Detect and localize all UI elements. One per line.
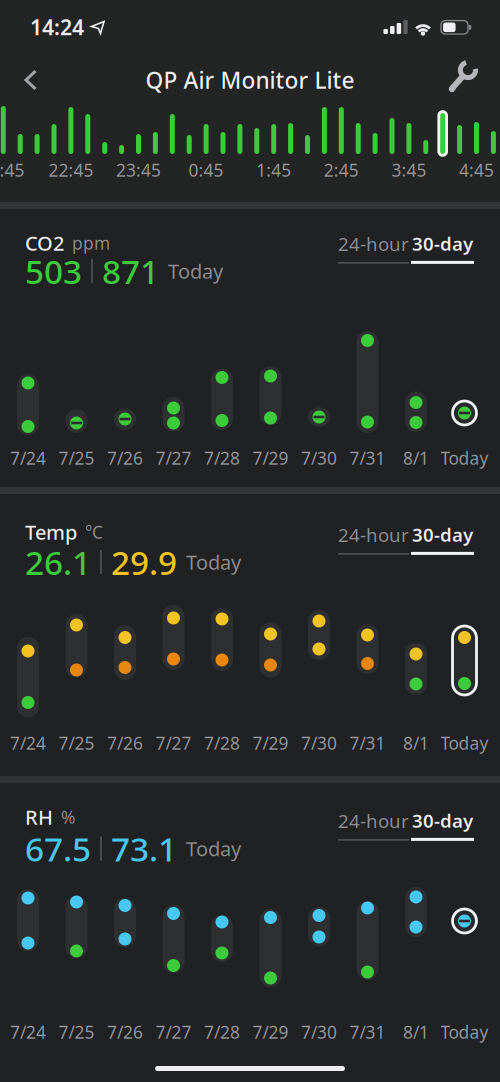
staticText: :45 xyxy=(0,158,24,181)
staticText: 7/30 xyxy=(301,446,337,469)
staticText: Today xyxy=(440,1020,488,1043)
staticText: 24-hour xyxy=(338,231,409,256)
staticText: 871 xyxy=(102,249,159,293)
staticText: 7/30 xyxy=(301,1020,337,1043)
staticText: 7/28 xyxy=(204,446,240,469)
staticText: 8/1 xyxy=(403,446,429,469)
staticText: 7/24 xyxy=(10,446,46,469)
staticText: 7/31 xyxy=(349,1020,385,1043)
staticText: 7/26 xyxy=(107,731,143,754)
staticText: 7/24 xyxy=(10,1020,46,1043)
staticText: 7/29 xyxy=(252,731,288,754)
staticText: 26.1 xyxy=(25,540,91,584)
staticText: 8/1 xyxy=(403,731,429,754)
button[interactable]: Settings xyxy=(441,55,485,99)
staticText: Today xyxy=(168,258,223,284)
staticText: 2:45 xyxy=(324,158,359,181)
staticText: 7/31 xyxy=(349,731,385,754)
button[interactable]: 30-day xyxy=(411,231,474,264)
staticText: 30-day xyxy=(412,522,473,547)
button[interactable]: 24-hour xyxy=(338,522,409,555)
staticText: ppm xyxy=(72,231,110,254)
staticText: 67.5 xyxy=(25,826,91,871)
staticText: Today xyxy=(440,446,488,469)
staticText: CO2 xyxy=(25,230,64,256)
staticText: 7/27 xyxy=(155,446,191,469)
staticText: Today xyxy=(440,731,488,754)
staticText: 1:45 xyxy=(256,158,291,181)
staticText: 7/29 xyxy=(252,1020,288,1043)
staticText: 24-hour xyxy=(338,808,409,833)
staticText: 8/1 xyxy=(403,1020,429,1043)
staticText: Today xyxy=(186,835,241,862)
staticText: 7/24 xyxy=(10,731,46,754)
staticText: Temp xyxy=(25,519,77,545)
button[interactable]: 24-hour xyxy=(338,808,409,841)
staticText: 7/25 xyxy=(58,446,94,469)
staticText: 30-day xyxy=(412,231,473,256)
staticText: 24-hour xyxy=(338,522,409,547)
button[interactable]: 30-day xyxy=(411,808,474,841)
staticText: 23:45 xyxy=(116,158,161,181)
staticText: 7/25 xyxy=(58,1020,94,1043)
staticText: 7/29 xyxy=(252,446,288,469)
staticText: 3:45 xyxy=(391,158,426,181)
staticText: 7/27 xyxy=(155,1020,191,1043)
staticText: 14:24 xyxy=(30,13,84,41)
staticText: 22:45 xyxy=(48,158,93,181)
staticText: % xyxy=(61,805,75,828)
staticText: 73.1 xyxy=(111,826,177,871)
staticText: RH xyxy=(25,804,53,830)
staticText: 7/28 xyxy=(204,1020,240,1043)
staticText: 30-day xyxy=(412,808,473,833)
staticText: Today xyxy=(186,549,241,575)
staticText: QP Air Monitor Lite xyxy=(145,65,354,95)
staticText: °C xyxy=(85,520,103,543)
staticText: 0:45 xyxy=(189,158,224,181)
staticText: 7/28 xyxy=(204,731,240,754)
staticText: 7/26 xyxy=(107,1020,143,1043)
staticText: 7/30 xyxy=(301,731,337,754)
staticText: 7/26 xyxy=(107,446,143,469)
staticText: 7/25 xyxy=(58,731,94,754)
staticText: 7/31 xyxy=(349,446,385,469)
button[interactable]: 30-day xyxy=(411,522,474,555)
staticText: 29.9 xyxy=(111,540,177,584)
staticText: 503 xyxy=(25,249,82,293)
button[interactable]: Back xyxy=(9,58,53,102)
staticText: 4:45 xyxy=(459,158,494,181)
button[interactable]: 24-hour xyxy=(338,231,409,264)
staticText: 7/27 xyxy=(155,731,191,754)
